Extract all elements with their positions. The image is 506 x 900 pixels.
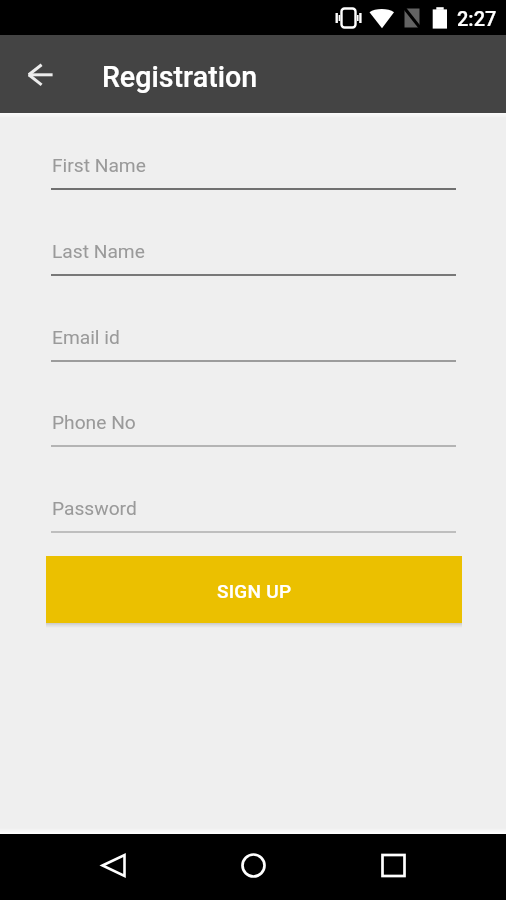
staticText: First Name — [52, 154, 146, 177]
button[interactable]: Recent apps — [369, 841, 418, 890]
staticText: Registration — [102, 60, 258, 94]
button[interactable]: Back — [16, 50, 64, 98]
button[interactable]: Email id — [41, 315, 467, 373]
button[interactable]: SIGN UP — [46, 556, 462, 623]
staticText: Phone No — [52, 411, 136, 434]
button[interactable]: Last Name — [41, 229, 467, 287]
button[interactable]: Home — [229, 841, 278, 890]
button[interactable]: Back — [89, 841, 138, 890]
staticText: Email id — [52, 326, 120, 349]
staticText: SIGN UP — [217, 580, 292, 602]
staticText: Last Name — [52, 240, 145, 263]
button[interactable]: First Name — [41, 143, 467, 201]
staticText: Password — [52, 497, 137, 520]
staticText: 2:27 — [457, 7, 497, 30]
button[interactable]: Phone No — [41, 400, 467, 458]
button[interactable]: Password — [41, 486, 467, 544]
